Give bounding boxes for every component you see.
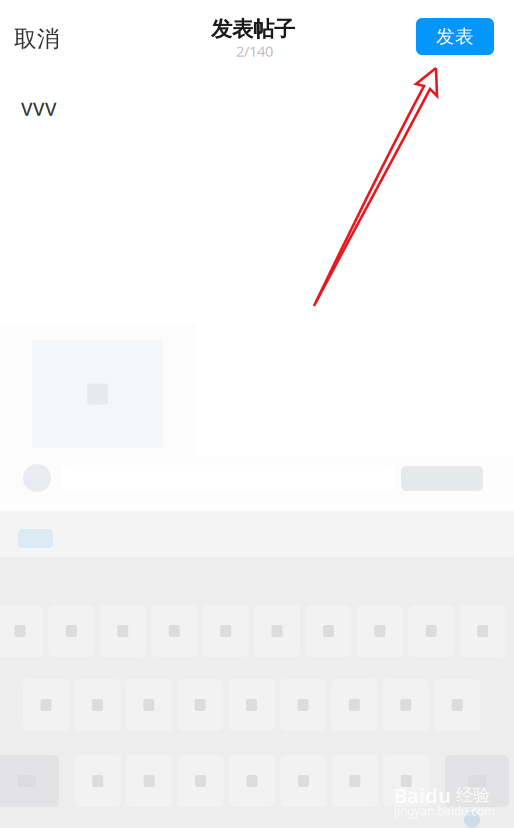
staticText: Baidu xyxy=(394,782,451,809)
staticText: 经验 xyxy=(456,785,490,806)
button[interactable]: 取消 xyxy=(0,0,84,67)
button[interactable]: 发表 xyxy=(416,18,494,55)
staticText: jingyan.baidu.com xyxy=(394,803,495,819)
staticText: 2/140 xyxy=(236,41,273,61)
staticText: 发表 xyxy=(436,25,474,48)
staticText: vvv xyxy=(21,92,57,122)
staticText: 发表帖子 xyxy=(211,16,295,42)
button[interactable]: Emoji xyxy=(23,464,51,492)
staticText: 取消 xyxy=(14,25,60,53)
button[interactable]: Topic tag xyxy=(18,529,53,548)
